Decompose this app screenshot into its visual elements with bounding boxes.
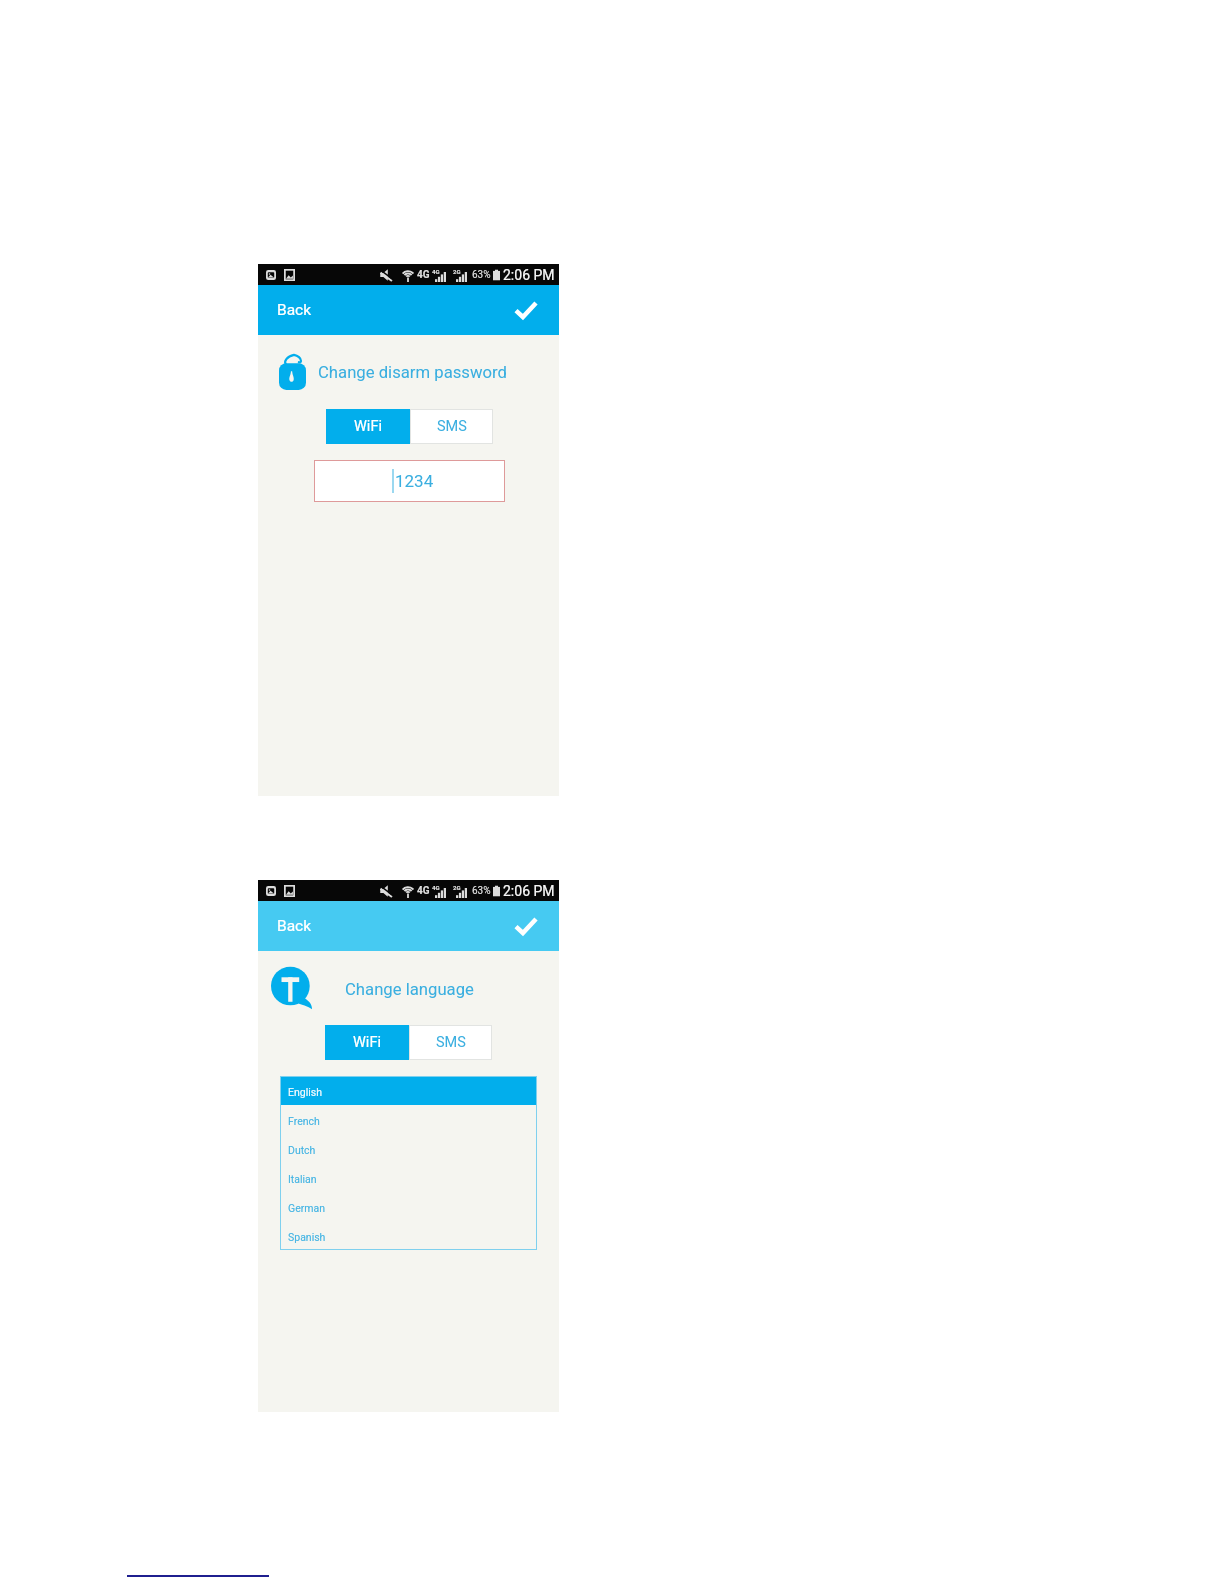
staticText: WiFi (354, 418, 382, 435)
staticText: 4G (417, 885, 430, 897)
staticText: 4G (432, 268, 440, 275)
staticText: 2:06 PM (503, 883, 555, 899)
button[interactable]: WiFi (326, 409, 410, 444)
button[interactable]: SMS (410, 409, 493, 444)
staticText: Italian (288, 1173, 317, 1185)
staticText: Back (277, 917, 312, 935)
staticText: SMS (436, 1034, 466, 1051)
button[interactable]: Italian (280, 1163, 537, 1192)
staticText: 63% (472, 269, 491, 281)
staticText: French (288, 1115, 320, 1127)
button[interactable]: SMS (409, 1025, 492, 1060)
staticText: Back (277, 301, 312, 319)
button[interactable]: German (280, 1192, 537, 1221)
button[interactable]: WiFi (325, 1025, 409, 1060)
staticText: WiFi (353, 1034, 381, 1051)
button[interactable]: Confirm (493, 290, 559, 330)
staticText: Spanish (288, 1231, 326, 1243)
staticText: Dutch (288, 1144, 316, 1156)
button[interactable]: English (280, 1076, 537, 1105)
staticText: English (288, 1086, 322, 1098)
staticText: SMS (437, 418, 467, 435)
button[interactable]: Confirm (493, 906, 559, 946)
button[interactable]: 1234 (314, 460, 505, 502)
staticText: 4G (432, 884, 440, 891)
button[interactable]: Back (258, 291, 328, 329)
staticText: Change disarm password (318, 363, 507, 383)
staticText: 4G (417, 269, 430, 281)
button[interactable]: Spanish (280, 1221, 537, 1250)
staticText: 2:06 PM (503, 267, 555, 283)
staticText: 2G (453, 884, 461, 891)
staticText: Change language (345, 980, 474, 1000)
staticText: German (288, 1202, 325, 1214)
button[interactable]: Back (258, 907, 328, 945)
staticText: 2G (453, 268, 461, 275)
staticText: 1234 (395, 471, 434, 491)
button[interactable]: Dutch (280, 1134, 537, 1163)
button[interactable]: French (280, 1105, 537, 1134)
staticText: 63% (472, 885, 491, 897)
